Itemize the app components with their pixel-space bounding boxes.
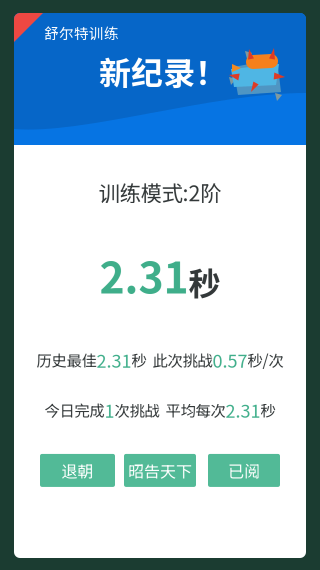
button[interactable]: 退朝 bbox=[40, 454, 115, 487]
staticText: 秒/次 bbox=[247, 349, 283, 371]
button[interactable]: 昭告天下 bbox=[124, 454, 196, 487]
staticText: 昭告天下 bbox=[128, 459, 192, 482]
staticText: 次挑战 bbox=[114, 399, 159, 421]
staticText: 1 bbox=[104, 397, 114, 423]
staticText: 秒 bbox=[131, 349, 146, 371]
staticText: 平均每次 bbox=[165, 399, 225, 421]
staticText: 今日完成 bbox=[44, 399, 104, 421]
staticText: 退朝 bbox=[61, 459, 93, 482]
staticText: 历史最佳 bbox=[36, 349, 96, 371]
staticText: 训练模式:2阶 bbox=[98, 177, 221, 207]
staticText: 2.31 bbox=[96, 347, 131, 373]
staticText: 2.31 bbox=[225, 397, 260, 423]
staticText: 0.57 bbox=[212, 347, 247, 373]
staticText: 新纪录！ bbox=[99, 48, 227, 94]
staticText: 秒 bbox=[260, 399, 275, 421]
button[interactable]: 已阅 bbox=[208, 454, 280, 487]
staticText: 2.31 bbox=[99, 244, 188, 306]
staticText: 已阅 bbox=[228, 459, 260, 482]
staticText: 秒 bbox=[188, 258, 220, 305]
staticText: 此次挑战 bbox=[152, 349, 212, 371]
staticText: 舒尔特训练 bbox=[44, 22, 119, 43]
